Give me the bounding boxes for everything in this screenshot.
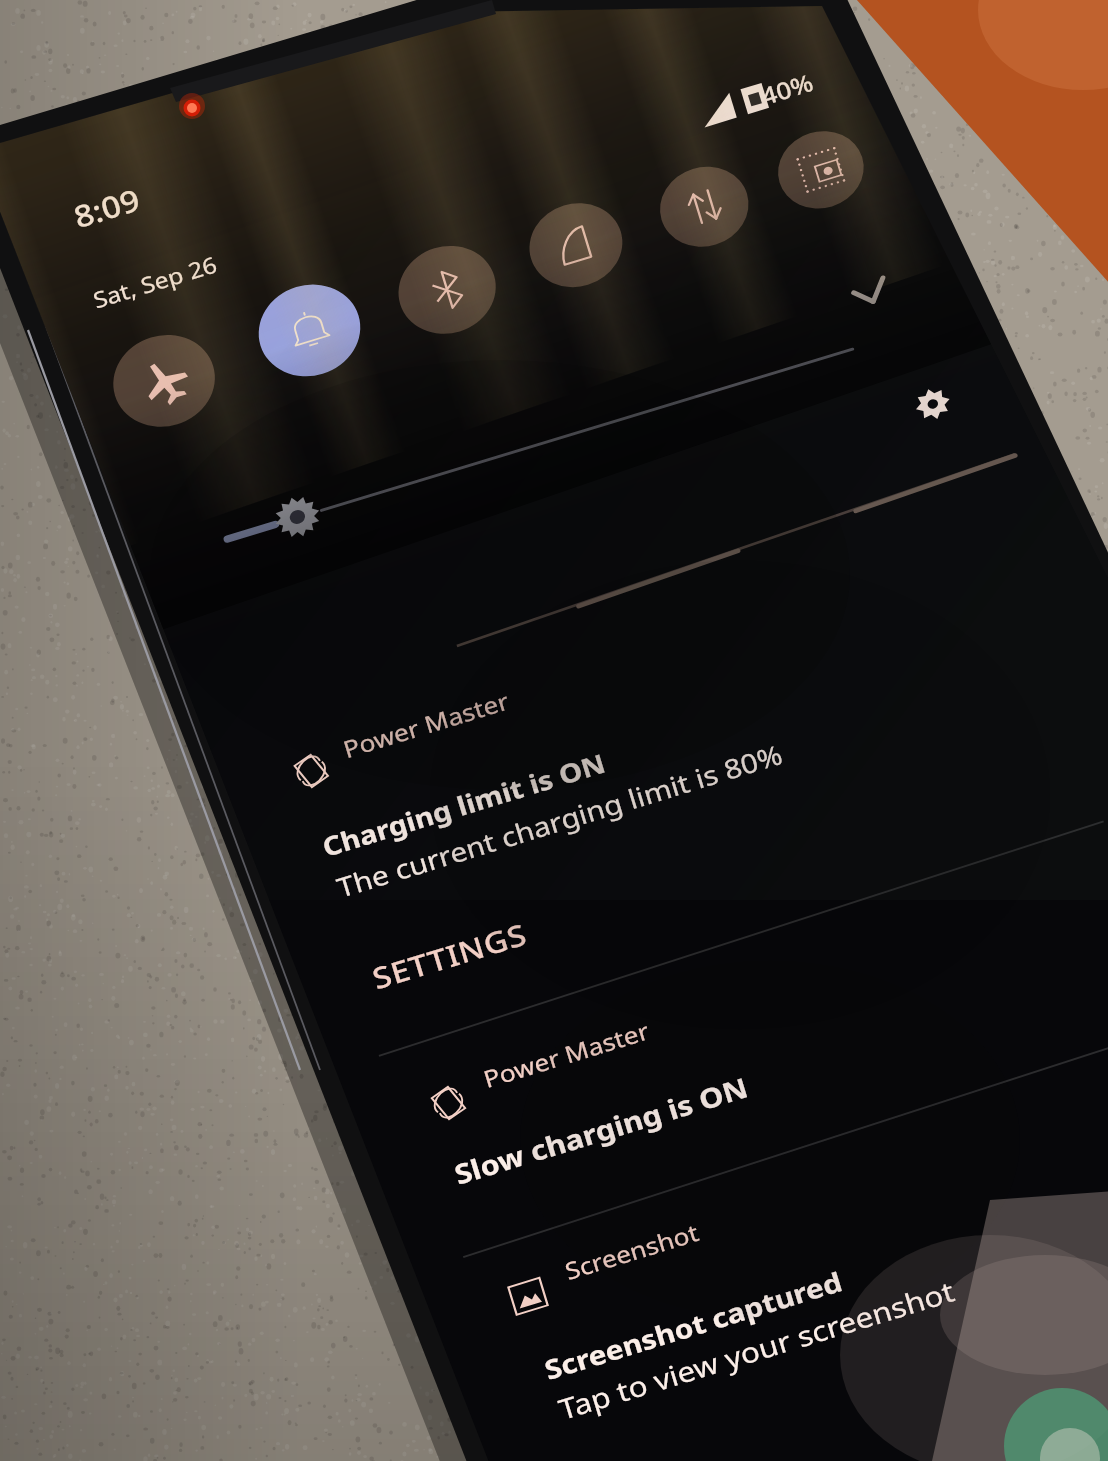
button[interactable] xyxy=(0,0,1108,1461)
